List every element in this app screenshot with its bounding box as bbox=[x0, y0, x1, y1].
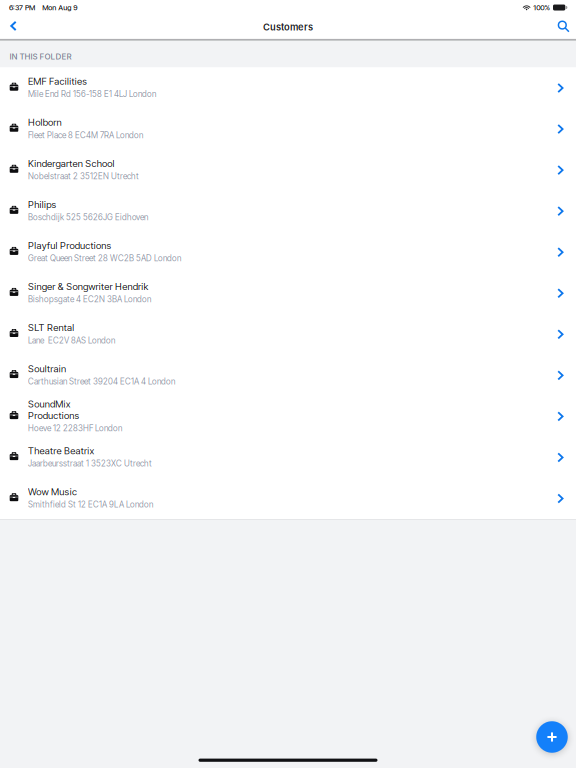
staticText: Singer & Songwriter Hendrik bbox=[28, 281, 148, 292]
staticText: Wow Music bbox=[28, 486, 77, 498]
staticText: Bishopsgate 4 EC2N 3BA London bbox=[28, 294, 151, 304]
staticText: 100% bbox=[533, 3, 550, 12]
staticText: Mile End Rd 156-158 E1 4LJ London bbox=[28, 89, 156, 99]
button[interactable]: Add bbox=[529, 714, 575, 760]
button[interactable]: Back bbox=[2, 17, 24, 39]
staticText: SLT Rental bbox=[28, 322, 74, 333]
staticText: IN THIS FOLDER bbox=[9, 52, 71, 61]
button[interactable]: EMF Facilities bbox=[0, 67, 576, 108]
staticText: Customers bbox=[263, 21, 313, 33]
staticText: Boschdijk 525 5626JG Eidhoven bbox=[28, 212, 148, 222]
staticText: Fleet Place 8 EC4M 7RA London bbox=[28, 130, 143, 140]
staticText: Smithfield St 12 EC1A 9LA London bbox=[28, 500, 153, 510]
staticText: Jaarbeursstraat 1 3523XC Utrecht bbox=[28, 459, 152, 469]
button[interactable]: Playful Productions bbox=[0, 232, 576, 273]
button[interactable]: SLT Rental bbox=[0, 314, 576, 355]
staticText: Hoeve 12 2283HF London bbox=[28, 423, 122, 433]
button[interactable]: Kindergarten School bbox=[0, 150, 576, 191]
button[interactable]: SoundMix Productions bbox=[0, 396, 576, 437]
button[interactable]: Search bbox=[551, 17, 575, 39]
staticText: Lane EC2V 8AS London bbox=[28, 335, 115, 345]
staticText: 6:37 PM bbox=[9, 3, 35, 12]
staticText: Nobelstraat 2 3512EN Utrecht bbox=[28, 171, 139, 181]
staticText: Theatre Beatrix bbox=[28, 445, 94, 456]
button[interactable]: Holborn bbox=[0, 108, 576, 149]
button[interactable]: Singer & Songwriter Hendrik bbox=[0, 273, 576, 314]
staticText: Holborn bbox=[28, 116, 61, 128]
staticText: EMF Facilities bbox=[28, 75, 87, 87]
staticText: Soultrain bbox=[28, 363, 66, 374]
staticText: Great Queen Street 28 WC2B 5AD London bbox=[28, 253, 181, 263]
staticText: Playful Productions bbox=[28, 240, 111, 251]
staticText: Carthusian Street 39204 EC1A 4 London bbox=[28, 376, 175, 386]
button[interactable]: Wow Music bbox=[0, 478, 576, 519]
button[interactable]: Soultrain bbox=[0, 355, 576, 396]
button[interactable]: Philips bbox=[0, 191, 576, 232]
staticText: Kindergarten School bbox=[28, 158, 114, 169]
staticText: Philips bbox=[28, 199, 56, 210]
staticText: SoundMix Productions bbox=[28, 398, 79, 421]
staticText: Mon Aug 9 bbox=[42, 3, 77, 12]
button[interactable]: Theatre Beatrix bbox=[0, 437, 576, 478]
